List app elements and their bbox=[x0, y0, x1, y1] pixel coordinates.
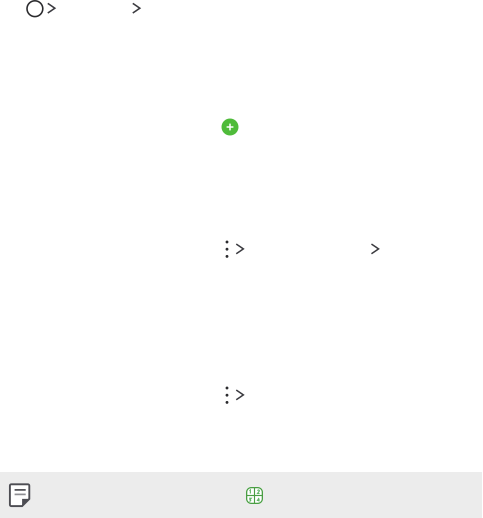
button[interactable]: Account bbox=[26, 0, 44, 17]
button[interactable]: Add bbox=[221, 118, 238, 135]
button[interactable]: Section details bbox=[132, 3, 141, 14]
button[interactable]: More options bbox=[221, 385, 232, 405]
button[interactable]: Open detail bbox=[371, 243, 379, 254]
button[interactable]: Account details bbox=[47, 3, 56, 14]
button[interactable]: Notes bbox=[9, 483, 30, 507]
button[interactable]: Keypad bbox=[246, 487, 263, 504]
button[interactable]: Open bbox=[235, 243, 244, 254]
button[interactable]: Open bbox=[235, 389, 244, 400]
button[interactable]: More options bbox=[221, 239, 232, 259]
